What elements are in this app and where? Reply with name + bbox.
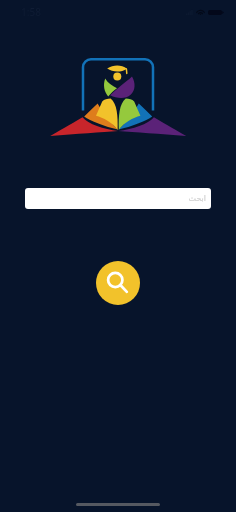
button[interactable]: Search [96, 261, 140, 305]
staticText: ابحث [188, 194, 206, 203]
button[interactable]: ابحث [25, 188, 211, 209]
